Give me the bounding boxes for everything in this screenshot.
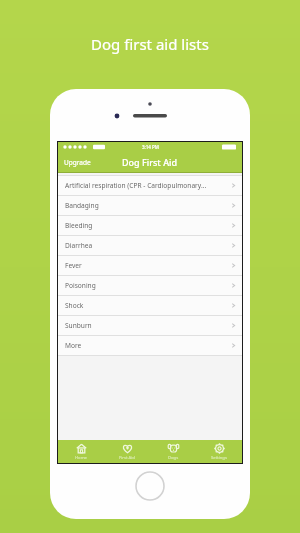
button[interactable]: Poisoning — [58, 276, 242, 296]
button[interactable]: Fever — [58, 256, 242, 276]
staticText: More — [65, 341, 82, 350]
staticText: Upgrade — [64, 158, 91, 167]
staticText: Shock — [65, 301, 84, 310]
staticText: Sunburn — [65, 321, 92, 330]
button[interactable]: Upgrade — [62, 156, 93, 169]
staticText: Artificial respiration (CPR - Cardiopulm… — [65, 181, 207, 190]
staticText: Dogs — [168, 455, 179, 461]
staticText: Home — [75, 455, 87, 461]
button[interactable]: Bleeding — [58, 216, 242, 236]
staticText: Poisoning — [65, 281, 96, 290]
staticText: Bandaging — [65, 201, 99, 210]
staticText: 3:14 PM — [142, 144, 159, 150]
staticText: Dog first aid lists — [91, 34, 209, 54]
staticText: Settings — [211, 455, 227, 461]
staticText: Fever — [65, 261, 82, 270]
button[interactable]: Dogs — [150, 440, 196, 463]
button[interactable]: Sunburn — [58, 316, 242, 336]
button[interactable]: Diarrhea — [58, 236, 242, 256]
button[interactable]: Settings — [196, 440, 242, 463]
button[interactable]: Bandaging — [58, 196, 242, 216]
button[interactable]: Home — [58, 440, 104, 463]
staticText: Bleeding — [65, 221, 93, 230]
staticText: Dog First Aid — [122, 156, 178, 168]
button[interactable]: Artificial respiration (CPR - Cardiopulm… — [58, 176, 242, 196]
staticText: First Aid — [119, 455, 135, 461]
button[interactable]: Shock — [58, 296, 242, 316]
staticText: Diarrhea — [65, 241, 93, 250]
button[interactable]: First Aid — [104, 440, 150, 463]
button[interactable]: More — [58, 336, 242, 356]
